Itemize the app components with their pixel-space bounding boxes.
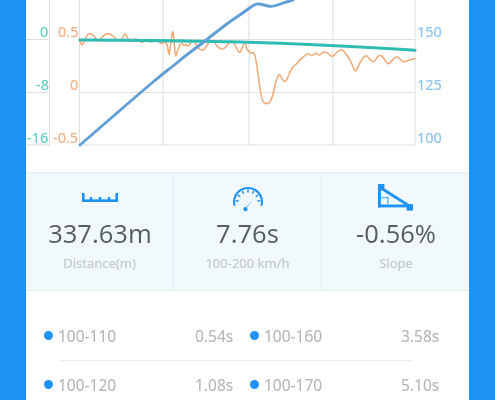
button[interactable]: 100-110 [40, 311, 246, 360]
staticText: 0.5 [58, 21, 79, 41]
staticText: 0.54s [195, 325, 234, 346]
staticText: 0 [70, 74, 79, 94]
button[interactable]: 100-170 [246, 360, 452, 400]
staticText: 7.76s [216, 216, 279, 251]
staticText: 100-160 [264, 325, 323, 346]
staticText: 100-110 [58, 325, 117, 346]
staticText: Distance(m) [63, 254, 136, 272]
staticText: 0 [40, 21, 49, 41]
staticText: 125 [417, 74, 442, 94]
staticText: 100 [417, 127, 442, 147]
staticText: -8 [36, 74, 49, 94]
button[interactable]: 7.76s [174, 173, 321, 290]
button[interactable]: -0.56% [322, 173, 469, 290]
button[interactable]: 337.63m [26, 173, 173, 290]
staticText: 100-170 [264, 374, 323, 395]
staticText: -16 [27, 127, 49, 147]
staticText: -0.5 [53, 127, 79, 147]
staticText: 1.08s [195, 374, 234, 395]
staticText: 3.58s [401, 325, 440, 346]
staticText: 100-200 km/h [205, 254, 290, 272]
button[interactable]: 100-120 [40, 360, 246, 400]
staticText: Slope [379, 254, 413, 272]
staticText: 100-120 [58, 374, 117, 395]
staticText: 5.10s [401, 374, 440, 395]
staticText: -0.56% [356, 216, 436, 251]
staticText: 337.63m [48, 216, 152, 251]
button[interactable]: 100-160 [246, 311, 452, 360]
staticText: 150 [417, 21, 442, 41]
